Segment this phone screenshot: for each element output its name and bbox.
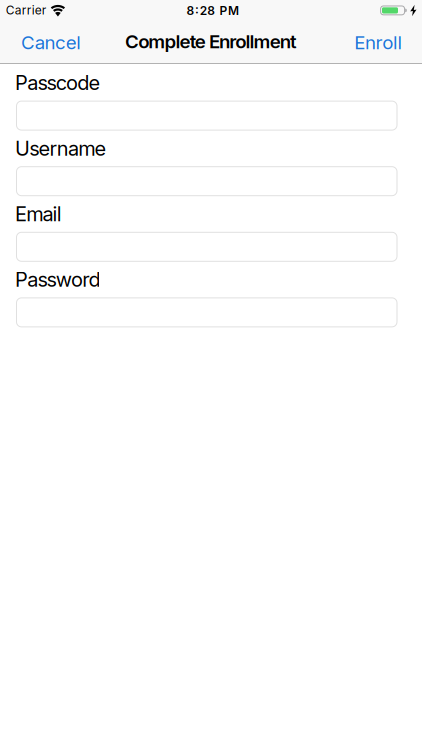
staticText: Password: [15, 268, 100, 291]
staticText: Passcode: [15, 71, 100, 95]
staticText: Username: [15, 137, 106, 160]
staticText: Enroll: [354, 31, 403, 53]
button[interactable]: Username text field: [16, 167, 397, 196]
button[interactable]: Enroll: [311, 22, 422, 63]
button[interactable]: Email text field: [16, 232, 397, 261]
button[interactable]: Passcode text field: [16, 101, 397, 130]
staticText: Email: [15, 202, 62, 226]
button[interactable]: Cancel: [1, 22, 113, 63]
button[interactable]: Password text field: [16, 298, 397, 327]
staticText: Cancel: [21, 31, 81, 53]
staticText: Complete Enrollment: [125, 30, 297, 52]
staticText: Carrier: [6, 3, 47, 17]
staticText: 8:28 PM: [186, 4, 239, 18]
